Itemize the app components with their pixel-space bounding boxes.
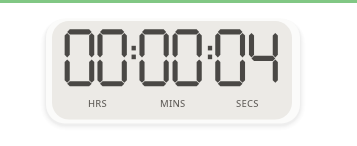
staticText: SECS <box>236 97 259 110</box>
staticText: MINS <box>160 97 186 110</box>
staticText: HRS <box>88 97 107 110</box>
